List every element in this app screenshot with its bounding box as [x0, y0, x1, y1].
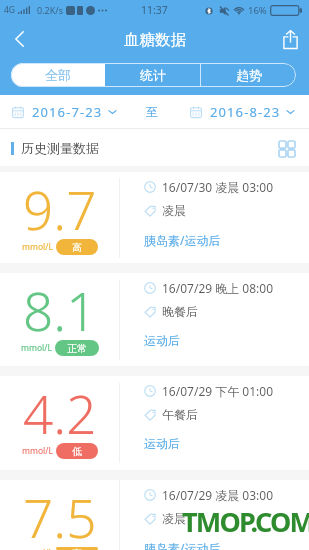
staticText: 胰岛素/运动后 [144, 232, 221, 248]
staticText: 16% [248, 4, 267, 17]
button[interactable]: Back [4, 24, 34, 54]
button[interactable]: 2016-8-23 [190, 95, 295, 128]
staticText: 运动后 [144, 436, 180, 451]
button[interactable]: 趋势 [201, 63, 296, 87]
staticText: 9.7 [23, 173, 97, 245]
button[interactable]: 统计 [105, 63, 200, 87]
button[interactable]: 2016-7-23 [12, 95, 117, 128]
button[interactable]: 8.1 [0, 273, 309, 366]
staticText: 高 [72, 547, 82, 550]
staticText: 至 [146, 104, 158, 119]
staticText: 正常 [67, 342, 87, 355]
button[interactable]: 全部 [11, 63, 105, 87]
staticText: 16/07/30 凌晨 03:00 [162, 179, 274, 195]
staticText: 8.1 [23, 274, 97, 346]
staticText: 运动后 [144, 333, 180, 348]
staticText: mmol/L [21, 342, 52, 354]
staticText: 7.5 [23, 481, 97, 550]
button[interactable]: 7.5 [0, 480, 309, 550]
button[interactable]: Share [274, 23, 306, 55]
staticText: mmol/L [22, 445, 53, 457]
staticText: 全部 [45, 67, 71, 83]
staticText: 11:37 [141, 3, 168, 17]
staticText: 4.2 [23, 377, 97, 449]
staticText: 2016-7-23 [32, 103, 103, 121]
staticText: 血糖数据 [124, 30, 186, 50]
staticText: 高 [72, 241, 82, 254]
staticText: mmol/L [22, 241, 53, 253]
staticText: 趋势 [236, 67, 262, 83]
staticText: mmol/L [22, 547, 53, 550]
button[interactable]: 9.7 [0, 172, 309, 263]
staticText: TMOP.COM [182, 503, 309, 540]
staticText: 16/07/29 晚上 08:00 [162, 280, 274, 296]
staticText: 统计 [140, 67, 166, 83]
staticText: 胰岛素/运动后 [144, 540, 221, 550]
button[interactable]: 4.2 [0, 376, 309, 470]
button[interactable]: Grid view [275, 136, 299, 160]
staticText: 4G [4, 4, 16, 16]
staticText: 低 [72, 445, 82, 458]
staticText: 16/07/29 下午 01:00 [162, 383, 274, 399]
staticText: 凌晨 [162, 203, 186, 218]
staticText: 2016-8-23 [210, 103, 281, 121]
staticText: 凌晨 [162, 511, 186, 526]
staticText: 晚餐后 [162, 304, 198, 319]
staticText: 午餐后 [162, 407, 198, 422]
staticText: 0.2K/s [37, 4, 63, 16]
staticText: 历史测量数据 [21, 140, 99, 156]
staticText: 16/07/29 凌晨 03:00 [162, 487, 274, 503]
